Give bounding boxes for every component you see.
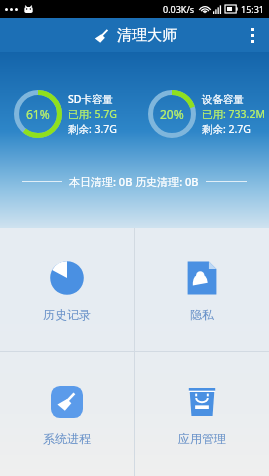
staticText: 本日清理: 0B 历史清理: 0B — [69, 174, 199, 189]
staticText: 剩余: 3.7G — [68, 122, 118, 136]
staticText: 设备容量 — [202, 93, 244, 106]
staticText: 隐私 — [190, 307, 214, 322]
button[interactable]: History — [0, 228, 134, 351]
button[interactable]: System processes — [0, 352, 134, 476]
staticText: 剩余: 2.7G — [202, 122, 252, 136]
staticText: 15:31 — [241, 3, 265, 15]
staticText: 清理大师 — [117, 26, 177, 45]
staticText: 历史记录 — [43, 307, 91, 322]
staticText: 61% — [26, 106, 50, 122]
button[interactable]: App management — [135, 352, 269, 476]
staticText: SD卡容量 — [68, 92, 113, 106]
staticText: 已用: 5.7G — [68, 107, 118, 121]
staticText: 应用管理 — [178, 431, 226, 446]
staticText: 系统进程 — [43, 431, 91, 446]
staticText: 已用: 733.2M — [202, 107, 265, 121]
button[interactable]: More options — [235, 18, 269, 52]
staticText: 0.03K/s — [163, 3, 195, 15]
button[interactable]: Privacy — [135, 228, 269, 351]
staticText: 20% — [160, 106, 184, 122]
